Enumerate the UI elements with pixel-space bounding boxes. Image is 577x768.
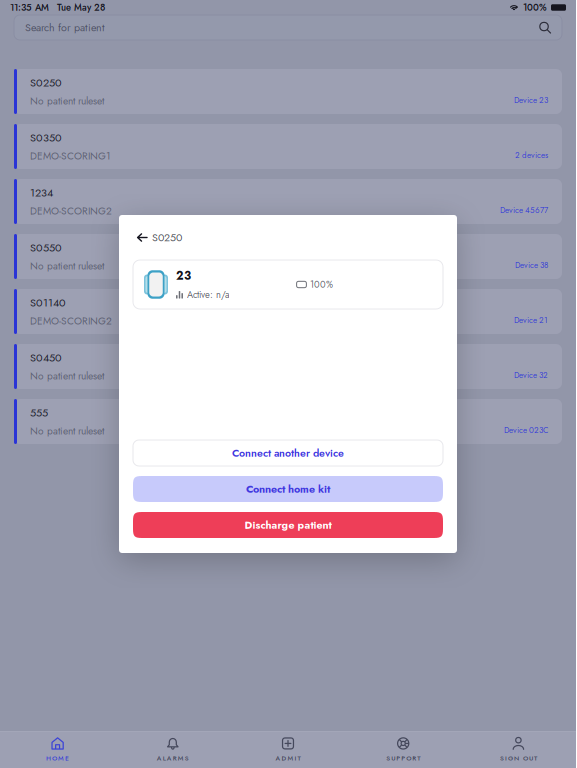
button[interactable]: S0450 [14, 344, 562, 389]
staticText: No patient ruleset [30, 94, 104, 108]
staticText: No patient ruleset [30, 369, 104, 383]
staticText: No patient ruleset [30, 259, 104, 273]
button[interactable]: 555 [14, 399, 562, 444]
button[interactable]: S0350 [14, 124, 562, 169]
staticText: S0250 [152, 230, 182, 245]
staticText: 100% [523, 1, 547, 14]
button[interactable]: Back [137, 228, 152, 247]
staticText: Active: n/a [187, 288, 229, 301]
staticText: Device 21 [514, 314, 548, 326]
staticText: S U P P O R T [386, 753, 420, 763]
staticText: Discharge patient [244, 517, 331, 533]
button[interactable]: S0250 [14, 69, 562, 114]
staticText: 100% [310, 278, 333, 291]
button[interactable]: Connect home kit [133, 476, 443, 502]
button[interactable]: A L A R M S [115, 731, 230, 768]
staticText: Search for patient [25, 20, 105, 35]
button[interactable]: S U P P O R T [346, 731, 461, 768]
staticText: 2 devices [515, 149, 548, 161]
staticText: DEMO-SCORING2 [30, 204, 112, 218]
staticText: No patient ruleset [30, 424, 104, 438]
button[interactable]: A D M I T [230, 731, 346, 768]
staticText: 555 [30, 405, 48, 421]
button[interactable]: H O M E [0, 731, 115, 768]
staticText: S0250 [30, 75, 62, 91]
button[interactable]: 1234 [14, 179, 562, 224]
staticText: 23 [176, 267, 191, 284]
staticText: Device 32 [514, 369, 548, 381]
button[interactable]: S I G N O U T [461, 731, 576, 768]
staticText: H O M E [46, 753, 69, 763]
staticText: S01140 [30, 295, 66, 311]
staticText: Connect another device [232, 445, 344, 461]
staticText: Device 023C [504, 424, 548, 436]
staticText: DEMO-SCORING1 [30, 149, 111, 163]
staticText: 11:35 AM [10, 1, 49, 14]
staticText: S0350 [30, 130, 62, 146]
staticText: DEMO-SCORING2 [30, 314, 112, 328]
staticText: Connect home kit [246, 481, 330, 497]
staticText: Device 23 [514, 94, 548, 106]
staticText: Device 45677 [500, 204, 548, 216]
button[interactable]: S0550 [14, 234, 562, 279]
staticText: S0450 [30, 350, 62, 366]
staticText: A L A R M S [157, 753, 189, 763]
button[interactable]: S01140 [14, 289, 562, 334]
button[interactable]: Discharge patient [133, 512, 443, 538]
staticText: A D M I T [275, 753, 300, 763]
staticText: Tue May 28 [57, 1, 105, 14]
staticText: 1234 [30, 185, 53, 201]
button[interactable]: Connect another device [133, 440, 443, 466]
staticText: S0550 [30, 240, 62, 256]
staticText: S I G N O U T [500, 753, 537, 763]
staticText: Device 38 [515, 259, 548, 271]
